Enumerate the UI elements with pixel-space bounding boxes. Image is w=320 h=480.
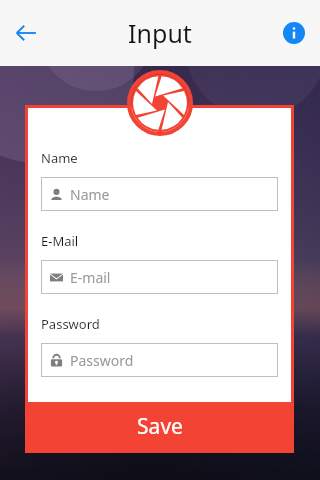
button[interactable]: Camera logo <box>127 70 193 136</box>
button[interactable]: Back <box>4 11 48 55</box>
button[interactable]: Save <box>28 402 291 450</box>
staticText: E-mail <box>70 268 111 287</box>
staticText: E-Mail <box>41 232 79 250</box>
button[interactable]: E-mail <box>41 260 278 294</box>
staticText: Save <box>137 412 183 441</box>
staticText: Password <box>70 351 134 370</box>
staticText: Input <box>128 16 192 50</box>
staticText: Name <box>70 185 110 204</box>
staticText: Name <box>41 149 78 167</box>
button[interactable]: Info <box>274 13 314 53</box>
button[interactable]: Name <box>41 177 278 211</box>
staticText: Password <box>41 315 100 333</box>
button[interactable]: Password <box>41 343 278 377</box>
